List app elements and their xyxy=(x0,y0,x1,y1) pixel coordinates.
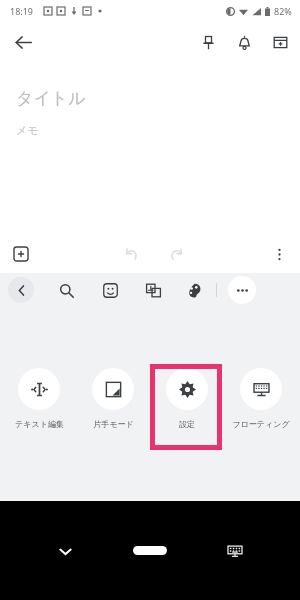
button[interactable]: Home xyxy=(133,546,167,555)
button[interactable]: タイトル xyxy=(16,88,284,109)
button[interactable]: Floating xyxy=(226,364,296,429)
button[interactable]: メモ xyxy=(16,123,284,137)
button[interactable]: More options xyxy=(264,239,294,269)
button[interactable]: More tools xyxy=(228,276,256,304)
button[interactable]: Pin xyxy=(193,27,223,57)
button[interactable]: Text edit xyxy=(4,364,74,429)
staticText: 片手モード xyxy=(93,419,134,429)
staticText: 設定 xyxy=(179,419,195,429)
button[interactable]: Switch keyboard xyxy=(220,536,250,566)
button[interactable]: Undo xyxy=(118,240,146,268)
button[interactable]: Add xyxy=(6,239,36,269)
staticText: テキスト編集 xyxy=(15,419,64,429)
button[interactable]: Settings xyxy=(152,364,222,429)
staticText: メモ xyxy=(16,123,39,137)
button[interactable]: Redo xyxy=(162,240,190,268)
button[interactable]: Collapse toolbar xyxy=(8,277,34,303)
button[interactable]: Back xyxy=(6,25,40,59)
button[interactable]: One-handed mode xyxy=(78,364,148,429)
button[interactable]: Translate xyxy=(139,276,167,304)
button[interactable]: Stickers xyxy=(96,276,124,304)
button[interactable]: Theme xyxy=(180,276,208,304)
staticText: 18:19 xyxy=(10,5,34,17)
button[interactable]: Reminder xyxy=(229,27,259,57)
button[interactable]: Hide keyboard xyxy=(50,536,80,566)
button[interactable]: Archive xyxy=(265,27,295,57)
button[interactable]: Search xyxy=(52,276,80,304)
staticText: 82% xyxy=(274,5,292,17)
staticText: タイトル xyxy=(16,88,86,109)
staticText: フローティング xyxy=(232,419,290,429)
